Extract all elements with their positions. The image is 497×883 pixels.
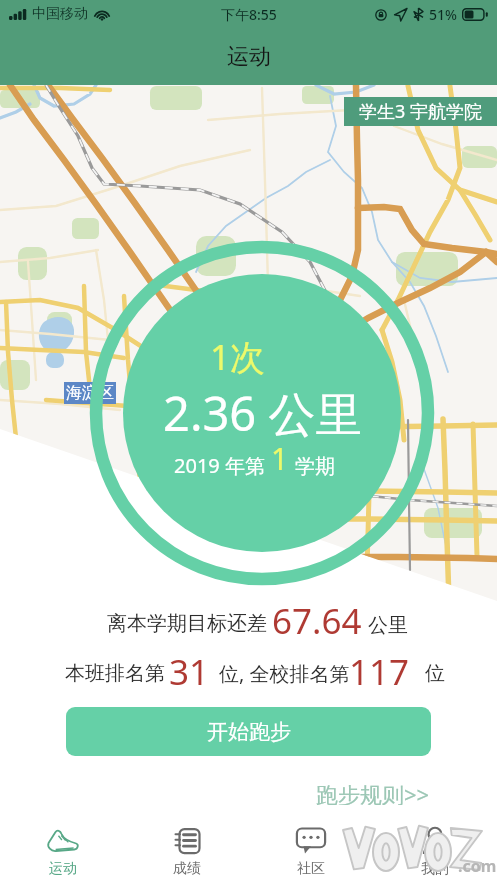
staticText: 117 [349, 648, 410, 696]
button[interactable]: 社区 [249, 805, 373, 883]
staticText: .com [458, 855, 497, 877]
staticText: 中国移动 [32, 5, 88, 23]
staticText: 学期 [295, 454, 335, 479]
staticText: 本班排名第 [65, 661, 165, 686]
staticText: 社区 [297, 860, 325, 878]
staticText: 海淀区 [66, 383, 114, 403]
button[interactable]: 开始跑步 [66, 707, 431, 756]
staticText: 31 [169, 648, 210, 696]
button[interactable]: 成绩 [125, 805, 249, 883]
staticText: 学生3 宇航学院 [359, 99, 482, 124]
button[interactable]: 学生3 宇航学院 [344, 97, 497, 126]
button[interactable]: 运动 [0, 805, 125, 883]
staticText: 公里 [368, 613, 408, 638]
staticText: 1次 [210, 333, 266, 381]
staticText: 位, 全校排名第 [219, 660, 350, 687]
staticText: 2.36 公里 [163, 381, 363, 445]
staticText: 跑步规则>> [316, 779, 430, 809]
staticText: 1 [271, 438, 289, 479]
staticText: 运动 [227, 43, 271, 71]
button[interactable]: 我的 [373, 805, 497, 883]
staticText: 成绩 [173, 860, 201, 878]
staticText: 开始跑步 [207, 719, 291, 745]
staticText: 67.64 [272, 597, 362, 645]
staticText: 离本学期目标还差 [107, 611, 267, 636]
staticText: 运动 [49, 860, 77, 878]
staticText: 下午8:55 [221, 5, 277, 24]
button[interactable]: 跑步规则>> [312, 775, 434, 813]
staticText: 位 [425, 661, 445, 686]
staticText: 我的 [421, 860, 449, 878]
staticText: 51% [429, 5, 457, 24]
staticText: 2019 年第 [174, 452, 265, 479]
